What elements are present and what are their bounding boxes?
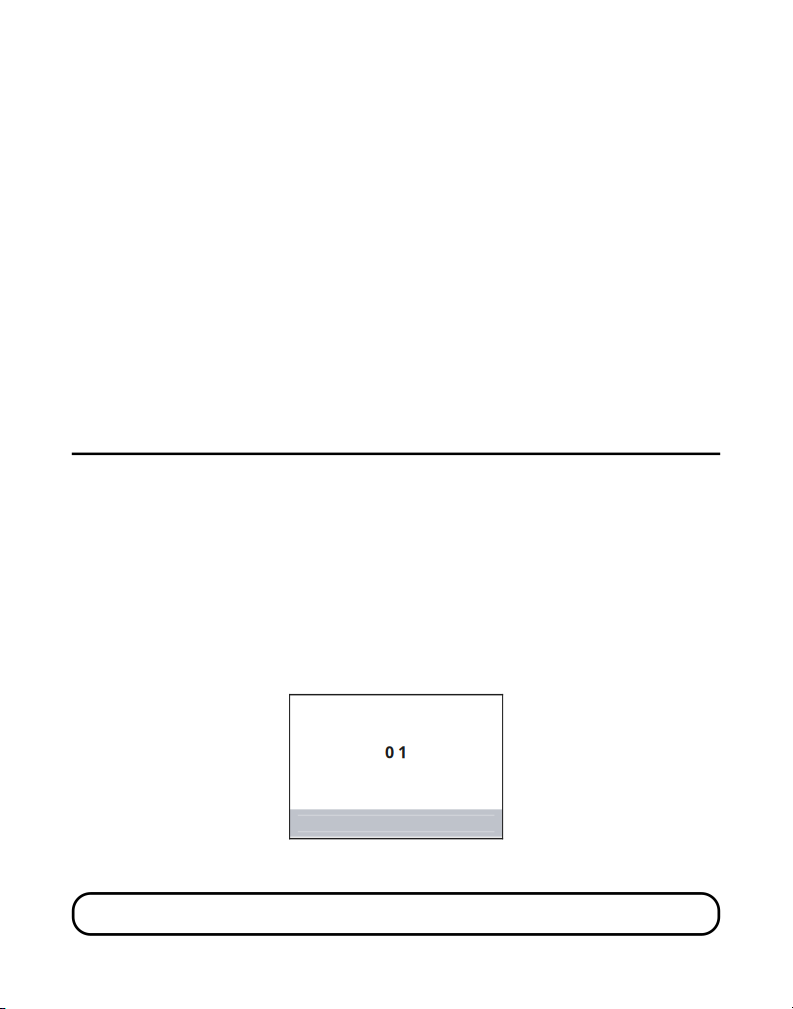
button[interactable]: Input field: [73, 893, 719, 934]
staticText: 0 1: [385, 741, 407, 763]
button[interactable]: Media placeholder: [290, 695, 503, 839]
